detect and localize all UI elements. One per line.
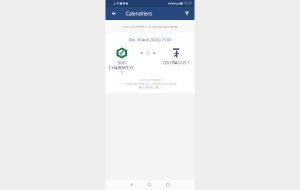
button[interactable]: Filtrer bbox=[180, 7, 193, 20]
staticText: Calendriers bbox=[125, 10, 152, 17]
staticText: COUTRAS US 1 bbox=[163, 60, 189, 65]
staticText: STADE MUNICIPAL 1 bbox=[137, 86, 162, 89]
button[interactable]: Retour bbox=[107, 7, 120, 20]
staticText: 1 bbox=[121, 70, 123, 75]
button[interactable]: Accueil bbox=[140, 180, 159, 190]
button[interactable]: Dim. 30 Aout 2020 à 15:00 bbox=[105, 33, 194, 93]
button[interactable]: Retour bbox=[122, 180, 140, 190]
staticText: 10:01 bbox=[183, 2, 192, 5]
staticText: PHASE REGIONALE 4 (NIVELLE AQUITAINE) bbox=[123, 82, 176, 85]
staticText: CHARENTE FC bbox=[109, 65, 135, 70]
button[interactable]: Applications récentes bbox=[159, 180, 177, 190]
staticText: SUD bbox=[118, 60, 126, 65]
staticText: Dim. 30 Aout 2020 à 15:00 bbox=[129, 38, 171, 42]
staticText: COUPE DE FRANCE / A (NIVELLE AQUITAINE) bbox=[122, 25, 178, 28]
staticText: COUPE DE FRANCE bbox=[138, 78, 162, 82]
